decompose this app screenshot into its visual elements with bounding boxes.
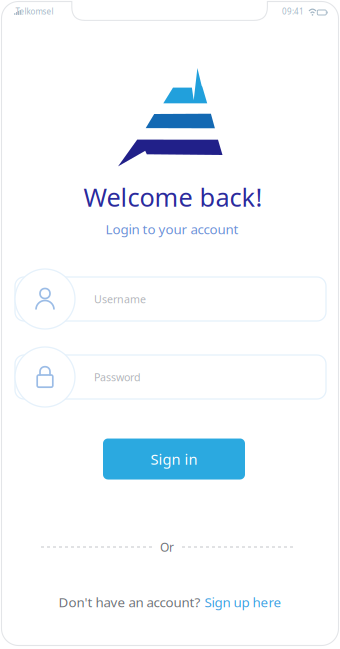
staticText: Login to your account xyxy=(105,220,238,238)
staticText: Sign up here xyxy=(204,593,281,611)
staticText: Or xyxy=(160,539,174,555)
staticText: Sign in xyxy=(150,449,197,469)
staticText: Don't have an account? xyxy=(58,593,200,611)
button[interactable]: Sign in xyxy=(103,438,245,479)
staticText: Username xyxy=(94,292,146,306)
staticText: 09:41 xyxy=(282,6,304,17)
staticText: Password xyxy=(94,370,141,384)
button[interactable]: Sign up here xyxy=(204,593,281,611)
staticText: Welcome back! xyxy=(83,180,262,214)
button[interactable]: Username xyxy=(15,269,326,329)
button[interactable]: Password xyxy=(15,347,326,407)
staticText: Telkomsel xyxy=(15,6,53,17)
